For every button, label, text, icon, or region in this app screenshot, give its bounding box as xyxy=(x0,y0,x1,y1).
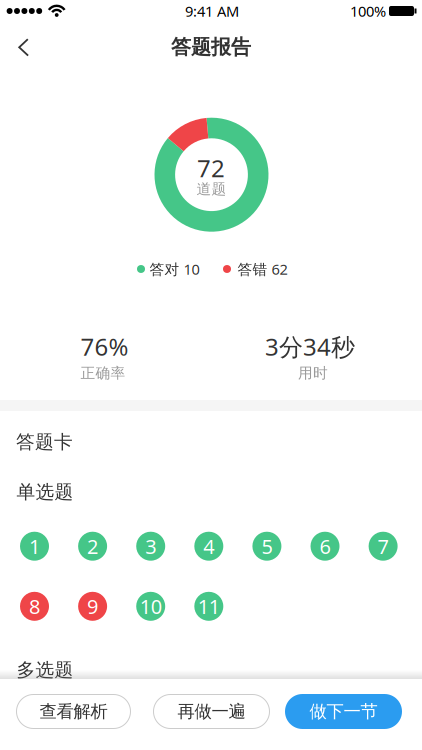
button[interactable]: 5 xyxy=(252,532,281,561)
staticText: 100% xyxy=(350,1,386,21)
button[interactable]: 2 xyxy=(78,532,107,561)
staticText: 正确率 xyxy=(80,364,125,382)
staticText: 6 xyxy=(319,533,330,559)
button[interactable]: 10 xyxy=(136,592,165,621)
staticText: 3 xyxy=(145,533,156,559)
staticText: 查看解析 xyxy=(39,701,107,722)
staticText: 9 xyxy=(87,593,98,620)
staticText: 答对 10 xyxy=(149,259,199,279)
staticText: 答题卡 xyxy=(16,430,73,453)
staticText: 8 xyxy=(29,593,40,620)
button[interactable]: 7 xyxy=(369,532,398,561)
button[interactable]: 做下一节 xyxy=(285,694,402,729)
button[interactable]: 6 xyxy=(310,532,339,561)
staticText: 3分34秒 xyxy=(265,331,355,362)
button[interactable]: 4 xyxy=(194,532,223,561)
staticText: 11 xyxy=(198,593,220,620)
staticText: 答错 62 xyxy=(237,259,287,279)
staticText: 76% xyxy=(80,331,128,362)
button[interactable]: 查看解析 xyxy=(16,694,131,729)
button[interactable]: 8 xyxy=(20,592,49,621)
staticText: 1 xyxy=(29,533,40,559)
staticText: 10 xyxy=(140,593,162,620)
button[interactable]: 1 xyxy=(20,532,49,561)
button[interactable]: 3 xyxy=(136,532,165,561)
staticText: 4 xyxy=(203,533,214,559)
button[interactable]: 9 xyxy=(78,592,107,621)
staticText: 做下一节 xyxy=(309,701,377,722)
staticText: 7 xyxy=(378,533,389,559)
staticText: 单选题 xyxy=(16,480,73,503)
staticText: 答题报告 xyxy=(171,35,251,59)
button[interactable]: 再做一遍 xyxy=(153,694,270,729)
staticText: 多选题 xyxy=(16,658,73,681)
staticText: 2 xyxy=(87,533,98,559)
staticText: 5 xyxy=(261,533,272,559)
staticText: 道题 xyxy=(196,180,226,198)
staticText: 72 xyxy=(197,152,225,184)
staticText: 用时 xyxy=(298,364,328,382)
staticText: 再做一遍 xyxy=(177,701,245,722)
button[interactable]: 11 xyxy=(194,592,223,621)
staticText: 9:41 AM xyxy=(185,1,239,21)
button[interactable]: Back xyxy=(6,35,42,60)
